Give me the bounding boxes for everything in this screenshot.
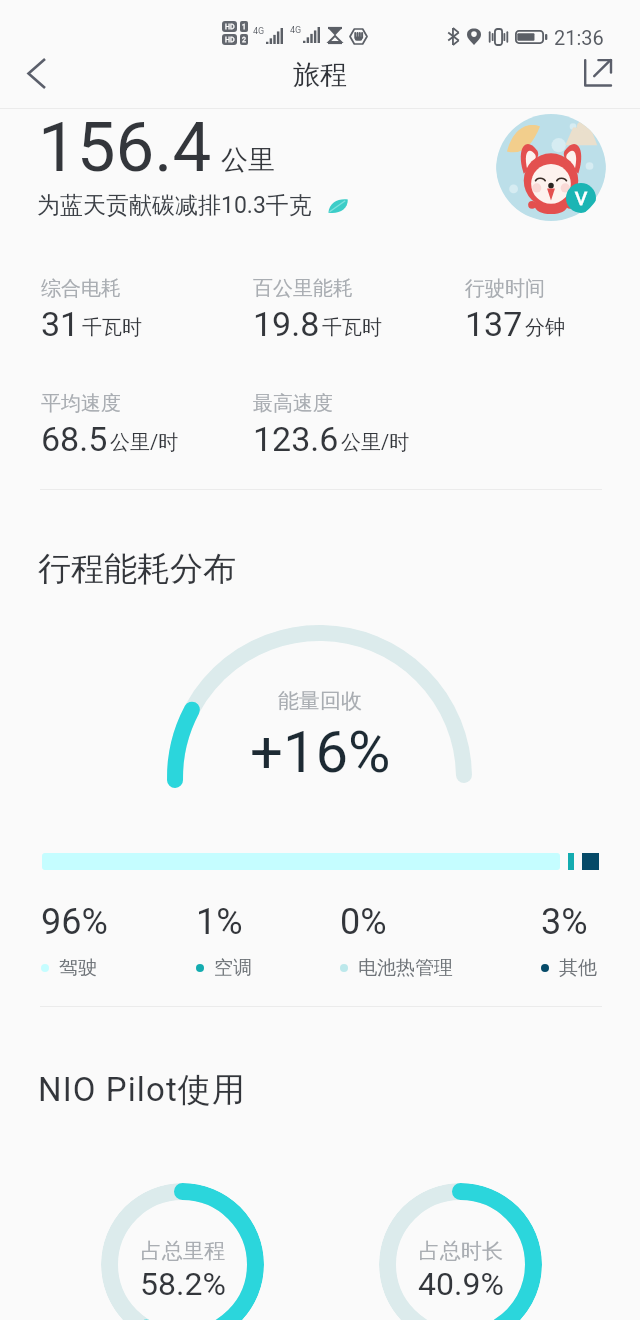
staticText: 驾驶 xyxy=(59,956,97,980)
staticText: 1% xyxy=(196,901,243,943)
staticText: 31 xyxy=(41,304,80,344)
staticText: 0% xyxy=(340,901,387,943)
staticText: 4G xyxy=(253,26,265,37)
staticText: 68.5 xyxy=(41,419,108,459)
staticText: V xyxy=(575,187,588,209)
button[interactable]: Share xyxy=(575,48,623,96)
button[interactable]: Profile xyxy=(496,114,606,224)
staticText: 58.2% xyxy=(140,1265,226,1303)
staticText: 19.8 xyxy=(253,304,320,344)
staticText: 96% xyxy=(41,901,108,943)
staticText: 千瓦时 xyxy=(82,315,142,340)
staticText: 电池热管理 xyxy=(358,956,453,980)
staticText: 占总里程 xyxy=(141,1238,225,1264)
staticText: 4G xyxy=(290,25,302,36)
staticText: 百公里能耗 xyxy=(253,276,353,301)
staticText: 公里/时 xyxy=(341,430,410,455)
staticText: 综合电耗 xyxy=(41,276,121,301)
button[interactable]: Back xyxy=(12,49,60,97)
staticText: 行程能耗分布 xyxy=(38,548,236,590)
staticText: 21:36 xyxy=(554,26,604,49)
staticText: 137 xyxy=(465,304,523,344)
staticText: 空调 xyxy=(214,956,252,980)
staticText: 3% xyxy=(541,901,588,943)
staticText: 最高速度 xyxy=(253,391,333,416)
button[interactable]: 占总里程 xyxy=(101,1183,264,1320)
staticText: 能量回收 xyxy=(278,688,362,714)
staticText: NIO Pilot使用 xyxy=(38,1069,246,1111)
staticText: 156.4 xyxy=(38,107,212,188)
staticText: 占总时长 xyxy=(419,1238,503,1264)
staticText: 分钟 xyxy=(525,315,565,340)
button[interactable]: 占总时长 xyxy=(379,1183,542,1320)
staticText: 1 xyxy=(242,23,246,31)
staticText: HD xyxy=(225,36,235,44)
staticText: 40.9% xyxy=(418,1265,504,1303)
staticText: 行驶时间 xyxy=(465,276,545,301)
staticText: 平均速度 xyxy=(41,391,121,416)
staticText: 为蓝天贡献碳减排10.3千克 xyxy=(37,191,312,220)
staticText: 千瓦时 xyxy=(322,315,382,340)
staticText: +16% xyxy=(250,718,391,786)
staticText: 公里 xyxy=(221,143,275,177)
staticText: 其他 xyxy=(559,956,597,980)
staticText: 旅程 xyxy=(293,58,347,92)
staticText: HD xyxy=(225,23,235,31)
staticText: 公里/时 xyxy=(110,430,179,455)
staticText: 2 xyxy=(242,36,246,44)
staticText: 123.6 xyxy=(253,419,339,459)
